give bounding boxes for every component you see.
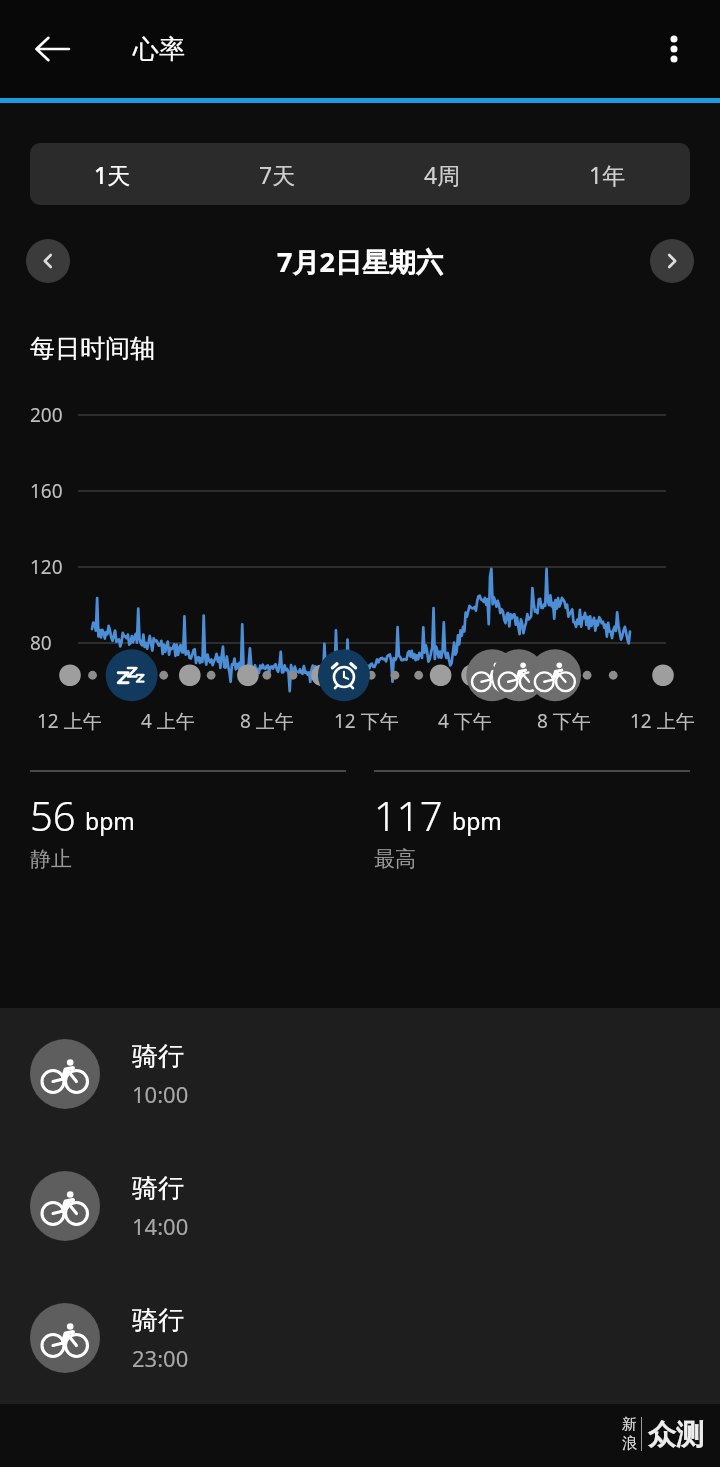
staticText: 心率 <box>133 33 185 66</box>
staticText: 骑行 <box>132 1304 184 1337</box>
staticText: 4 下午 <box>438 708 492 734</box>
button[interactable]: 1年 <box>525 143 690 205</box>
staticText: 80 <box>30 630 52 656</box>
button[interactable]: 骑行 <box>0 1272 720 1404</box>
staticText: 1天 <box>94 159 131 190</box>
staticText: 23:00 <box>132 1343 189 1373</box>
staticText: 新 <box>622 1415 637 1434</box>
staticText: 12 上午 <box>630 708 695 734</box>
staticText: 7天 <box>259 159 296 190</box>
button[interactable]: 4周 <box>360 143 525 205</box>
staticText: 骑行 <box>132 1172 184 1205</box>
staticText: 12 下午 <box>334 708 399 734</box>
button[interactable]: 骑行 <box>0 1008 720 1140</box>
staticText: 14:00 <box>132 1211 189 1241</box>
staticText: 骑行 <box>132 1040 184 1073</box>
button[interactable]: Back <box>16 13 88 85</box>
staticText: bpm <box>85 805 135 836</box>
staticText: 静止 <box>30 846 72 872</box>
staticText: 4周 <box>424 159 461 190</box>
staticText: 4 上午 <box>141 708 195 734</box>
button[interactable]: 1天 <box>30 143 195 205</box>
button[interactable]: Previous day <box>26 239 70 283</box>
staticText: 56 <box>30 788 76 842</box>
button[interactable]: 7天 <box>195 143 360 205</box>
staticText: 117 <box>374 788 443 842</box>
staticText: 10:00 <box>132 1079 189 1109</box>
button[interactable]: 骑行 <box>0 1140 720 1272</box>
staticText: 160 <box>30 478 63 504</box>
button[interactable]: More options <box>640 15 708 83</box>
staticText: 众测 <box>648 1417 704 1452</box>
staticText: 7月2日星期六 <box>277 243 443 280</box>
staticText: 每日时间轴 <box>30 333 155 364</box>
staticText: 8 上午 <box>240 708 294 734</box>
button[interactable]: Next day <box>650 239 694 283</box>
staticText: 1年 <box>589 159 626 190</box>
staticText: 12 上午 <box>37 708 102 734</box>
staticText: 8 下午 <box>537 708 591 734</box>
staticText: 120 <box>30 554 63 580</box>
staticText: 最高 <box>374 846 416 872</box>
staticText: 浪 <box>622 1434 637 1453</box>
staticText: bpm <box>452 805 502 836</box>
staticText: 200 <box>30 402 63 428</box>
